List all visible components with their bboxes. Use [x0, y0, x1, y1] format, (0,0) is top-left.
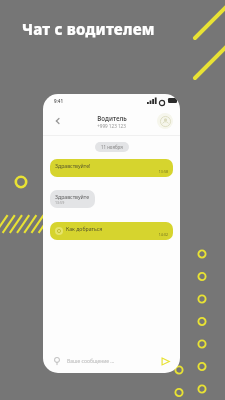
- button[interactable]: Back: [50, 113, 66, 129]
- staticText: Водитель: [97, 114, 127, 122]
- staticText: 13:58: [55, 169, 168, 174]
- button[interactable]: Driver profile: [157, 113, 173, 129]
- button[interactable]: Ваше сообщение ...: [67, 358, 159, 365]
- staticText: Чат с водителем: [22, 19, 155, 39]
- button[interactable]: Attach location: [51, 355, 63, 367]
- button[interactable]: Send: [159, 355, 172, 368]
- staticText: 13:59: [55, 200, 65, 205]
- staticText: 11 ноября: [101, 144, 123, 150]
- staticText: Здравствуйте: [55, 193, 90, 200]
- staticText: Здравствуйте!: [55, 162, 91, 169]
- staticText: Ваше сообщение ...: [67, 358, 115, 365]
- staticText: 9:41: [54, 98, 63, 104]
- staticText: +999 123 123: [97, 123, 126, 129]
- staticText: 14:02: [66, 232, 168, 237]
- button[interactable]: Как добраться: [50, 222, 173, 240]
- staticText: Как добраться: [66, 225, 103, 232]
- button[interactable]: Здравствуйте: [50, 190, 95, 208]
- button[interactable]: Здравствуйте!: [50, 159, 173, 177]
